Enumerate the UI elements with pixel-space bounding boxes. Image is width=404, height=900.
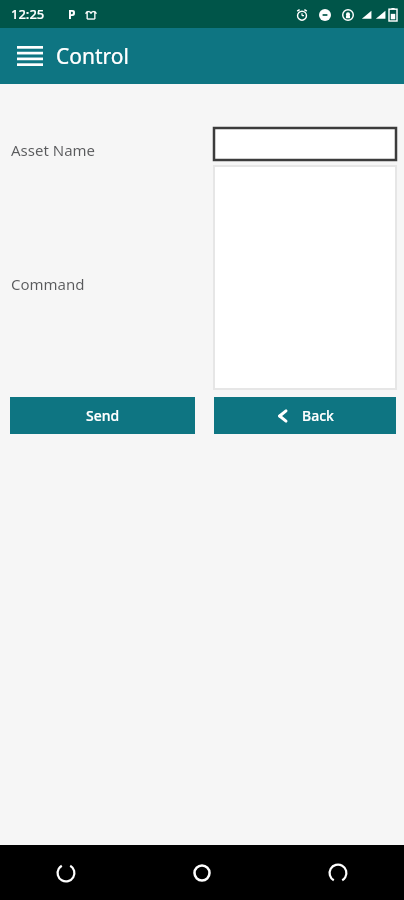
button[interactable]: Back (40, 847, 92, 899)
staticText: Asset Name (11, 140, 96, 160)
button[interactable]: Back (214, 397, 396, 434)
button[interactable]: Home (176, 847, 228, 899)
staticText: Back (302, 406, 334, 425)
button[interactable]: Send (10, 397, 195, 434)
staticText: Control (56, 42, 129, 71)
button[interactable]: Recent apps (312, 847, 364, 899)
staticText: P (68, 6, 76, 22)
button[interactable]: Open navigation menu (10, 36, 50, 76)
staticText: Send (86, 406, 120, 425)
staticText: 12:25 (11, 5, 45, 23)
button[interactable]: Command input (214, 166, 396, 389)
button[interactable]: Asset Name input (214, 128, 396, 160)
staticText: Command (11, 274, 85, 294)
